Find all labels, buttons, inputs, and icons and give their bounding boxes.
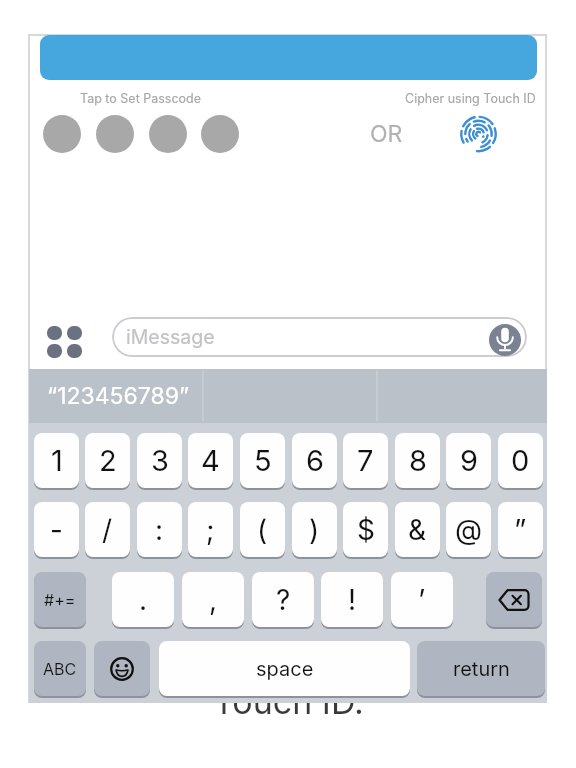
button[interactable]: :	[137, 502, 182, 557]
button[interactable]: !	[321, 572, 383, 627]
button[interactable]: 9	[446, 433, 491, 488]
button[interactable]: ?	[252, 572, 314, 627]
staticText: ,	[209, 583, 218, 617]
staticText: “123456789”	[47, 382, 190, 410]
button[interactable]: 6	[292, 433, 337, 488]
staticText: Tap to Set Passcode	[80, 91, 202, 106]
button[interactable]	[201, 115, 239, 153]
button[interactable]: ABC	[34, 641, 86, 696]
staticText: !	[348, 583, 357, 617]
button[interactable]: ;	[188, 502, 233, 557]
button[interactable]: iMessage	[112, 317, 527, 357]
button[interactable]: .	[112, 572, 174, 627]
staticText: ?	[276, 583, 291, 617]
staticText: 6	[306, 443, 324, 478]
staticText: (	[257, 513, 268, 547]
staticText: space	[256, 657, 314, 681]
staticText: :	[155, 513, 164, 547]
staticText: OR	[370, 120, 403, 148]
staticText: $	[357, 513, 375, 547]
staticText: ”	[514, 513, 527, 547]
button[interactable]: (	[240, 502, 285, 557]
button[interactable]	[149, 115, 187, 153]
staticText: 1	[51, 443, 63, 478]
button[interactable]: &	[395, 502, 440, 557]
button[interactable]: space	[159, 641, 410, 696]
staticText: @	[455, 513, 483, 547]
button[interactable]	[94, 641, 150, 696]
staticText: Cipher using Touch ID	[405, 91, 536, 106]
button[interactable]: 1	[34, 433, 79, 488]
staticText: iMessage	[126, 325, 215, 349]
button[interactable]: return	[417, 641, 545, 696]
button[interactable]: ,	[182, 572, 244, 627]
button[interactable]	[96, 115, 134, 153]
button[interactable]	[47, 326, 82, 357]
staticText: 8	[409, 443, 427, 478]
button[interactable]: -	[34, 502, 79, 557]
button[interactable]: $	[343, 502, 388, 557]
button[interactable]: ”	[498, 502, 543, 557]
staticText: )	[309, 513, 320, 547]
button[interactable]	[40, 35, 537, 80]
button[interactable]	[459, 114, 497, 154]
button[interactable]	[489, 324, 521, 356]
staticText: -	[50, 513, 63, 547]
button[interactable]: 0	[498, 433, 543, 488]
button[interactable]	[43, 115, 81, 153]
button[interactable]: “123456789”	[29, 369, 203, 423]
button[interactable]: @	[446, 502, 491, 557]
button[interactable]: /	[85, 502, 130, 557]
button[interactable]: 7	[343, 433, 388, 488]
staticText: ;	[206, 513, 215, 547]
button[interactable]: ’	[391, 572, 453, 627]
staticText: Touch ID.	[213, 681, 364, 722]
staticText: 0	[511, 443, 530, 478]
staticText: 2	[99, 443, 117, 478]
staticText: return	[453, 657, 510, 681]
staticText: 9	[460, 443, 478, 478]
staticText: #+=	[44, 590, 76, 609]
staticText: .	[139, 583, 148, 617]
staticText: 3	[151, 443, 169, 478]
button[interactable]: 8	[395, 433, 440, 488]
staticText: 4	[201, 443, 220, 478]
button[interactable]: 4	[188, 433, 233, 488]
button[interactable]: 5	[240, 433, 285, 488]
button[interactable]	[486, 572, 542, 627]
button[interactable]: #+=	[34, 572, 86, 627]
staticText: ’	[418, 583, 426, 617]
staticText: 7	[357, 443, 374, 478]
staticText: ABC	[43, 659, 77, 678]
staticText: &	[408, 513, 427, 547]
button[interactable]: 2	[85, 433, 130, 488]
staticText: 5	[254, 443, 272, 478]
staticText: /	[102, 513, 113, 547]
button[interactable]: )	[292, 502, 337, 557]
button[interactable]: 3	[137, 433, 182, 488]
